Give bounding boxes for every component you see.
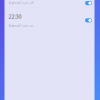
staticText: 22:30 [8,13,21,20]
button[interactable]: Alarm will turn off [4,0,94,8]
staticText: Alarm will turn on [8,24,33,28]
staticText: Alarm will turn off [8,1,33,5]
button[interactable]: 22:30 [4,8,94,30]
